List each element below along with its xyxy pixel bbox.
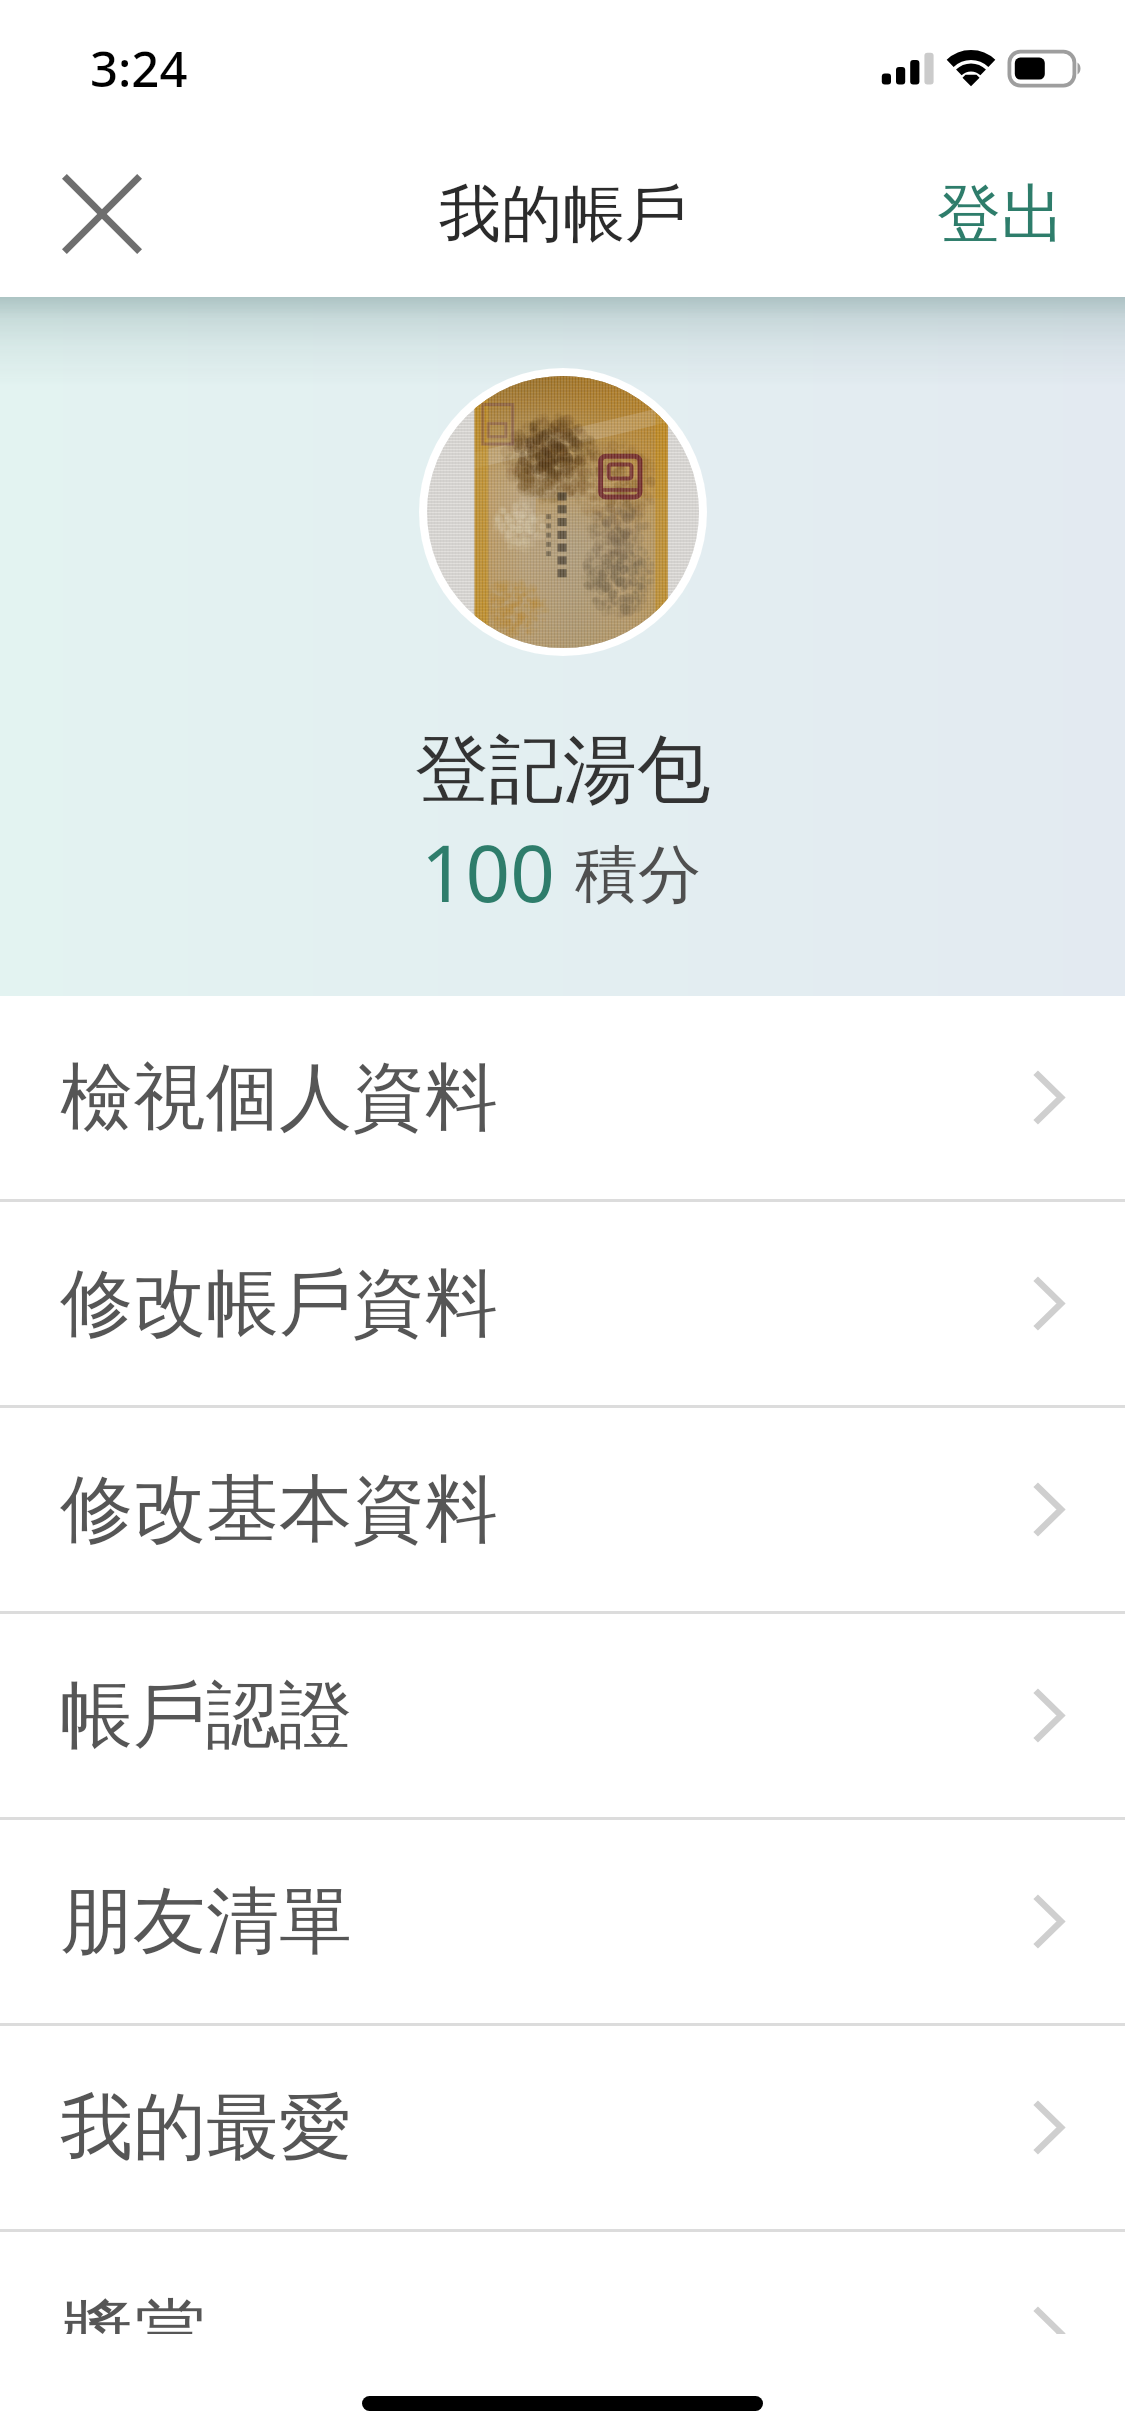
staticText: 帳戶認證 — [60, 1670, 352, 1762]
staticText: 積分 — [575, 835, 701, 914]
staticText: 朋友清單 — [60, 1876, 352, 1968]
button[interactable]: 帳戶認證 — [0, 1614, 1125, 1817]
button[interactable]: 獎賞 — [0, 2232, 1125, 2435]
staticText: 修改帳戶資料 — [60, 1258, 498, 1350]
button[interactable]: 朋友清單 — [0, 1820, 1125, 2023]
staticText: 3:24 — [90, 35, 188, 102]
button[interactable]: 登出 — [903, 144, 1125, 285]
staticText: 我的帳戶 — [439, 175, 687, 253]
button[interactable]: 修改帳戶資料 — [0, 1202, 1125, 1405]
button[interactable]: Close — [17, 143, 187, 285]
button[interactable]: 檢視個人資料 — [0, 996, 1125, 1199]
button[interactable]: 我的最愛 — [0, 2026, 1125, 2229]
staticText: 檢視個人資料 — [60, 1052, 498, 1144]
staticText: 我的最愛 — [60, 2082, 352, 2174]
staticText: 登記湯包 — [415, 724, 711, 817]
staticText: 100 — [421, 819, 555, 925]
staticText: 獎賞 — [60, 2288, 206, 2380]
button[interactable]: 修改基本資料 — [0, 1408, 1125, 1611]
staticText: 登出 — [937, 174, 1065, 255]
staticText: 修改基本資料 — [60, 1464, 498, 1556]
